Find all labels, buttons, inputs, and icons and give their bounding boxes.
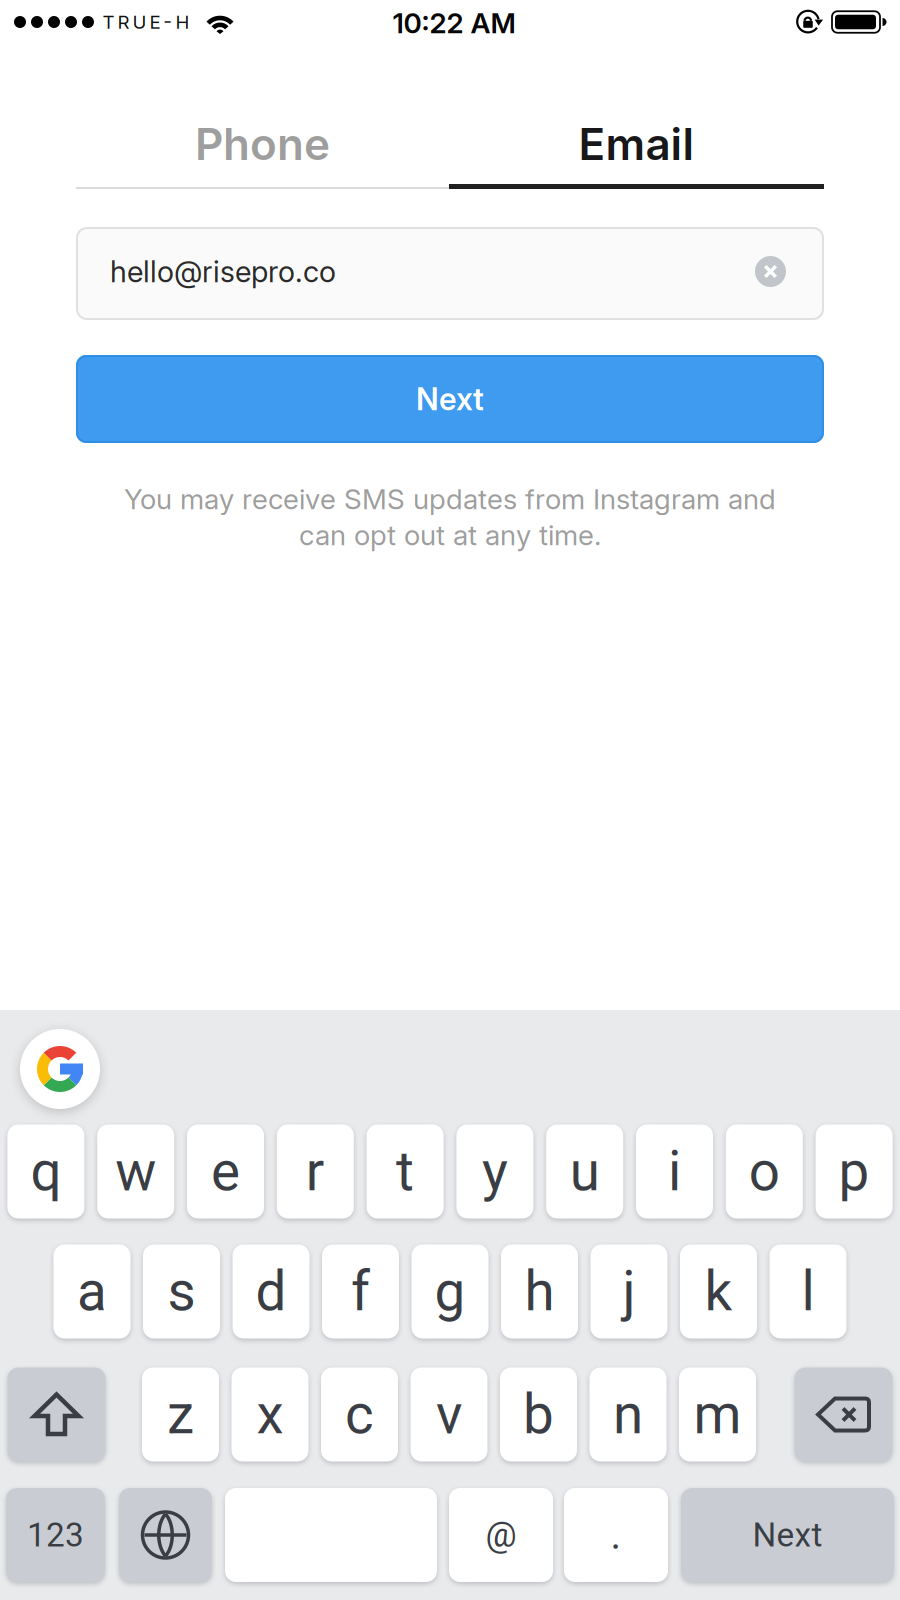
button[interactable]: . bbox=[564, 1488, 668, 1582]
staticText: g bbox=[434, 1259, 465, 1324]
button[interactable]: i bbox=[636, 1124, 713, 1218]
staticText: s bbox=[167, 1259, 195, 1324]
staticText: w bbox=[115, 1139, 156, 1204]
staticText: Phone bbox=[195, 117, 330, 171]
button[interactable]: p bbox=[816, 1124, 893, 1218]
staticText: n bbox=[613, 1382, 643, 1447]
staticText: Email bbox=[578, 117, 694, 171]
button[interactable]: Shift bbox=[7, 1367, 105, 1461]
button[interactable]: Google bbox=[20, 1029, 100, 1109]
staticText: 10:22 AM bbox=[392, 6, 515, 40]
button[interactable]: m bbox=[679, 1367, 756, 1461]
staticText: f bbox=[351, 1259, 370, 1324]
staticText: v bbox=[436, 1382, 462, 1447]
staticText: j bbox=[622, 1259, 635, 1324]
button[interactable]: z bbox=[142, 1367, 219, 1461]
staticText: k bbox=[704, 1259, 732, 1324]
button[interactable]: s bbox=[143, 1244, 220, 1338]
staticText: You may receive SMS updates from Instagr… bbox=[124, 482, 776, 516]
staticText: p bbox=[839, 1139, 870, 1204]
button[interactable]: Next bbox=[681, 1488, 894, 1582]
button[interactable]: d bbox=[232, 1244, 309, 1338]
button[interactable]: u bbox=[546, 1124, 623, 1218]
button[interactable]: Switch keyboard bbox=[119, 1488, 212, 1582]
button[interactable]: w bbox=[97, 1124, 174, 1218]
staticText: Next bbox=[752, 1515, 822, 1555]
button[interactable]: Clear text bbox=[755, 256, 786, 287]
staticText: r bbox=[306, 1139, 325, 1204]
staticText: q bbox=[30, 1139, 61, 1204]
button[interactable]: c bbox=[321, 1367, 398, 1461]
staticText: a bbox=[77, 1259, 107, 1324]
staticText: x bbox=[256, 1382, 283, 1447]
staticText: m bbox=[693, 1382, 741, 1447]
button[interactable]: l bbox=[769, 1244, 846, 1338]
button[interactable]: Delete bbox=[794, 1367, 892, 1461]
button[interactable]: e bbox=[187, 1124, 264, 1218]
button[interactable]: j bbox=[590, 1244, 667, 1338]
button[interactable]: n bbox=[589, 1367, 666, 1461]
staticText: h bbox=[524, 1259, 554, 1324]
button[interactable]: h bbox=[501, 1244, 578, 1338]
staticText: can opt out at any time. bbox=[299, 518, 601, 552]
staticText: u bbox=[570, 1139, 600, 1204]
staticText: hello@risepro.co bbox=[110, 254, 336, 289]
staticText: b bbox=[523, 1382, 554, 1447]
button[interactable]: r bbox=[277, 1124, 354, 1218]
staticText: Next bbox=[416, 380, 484, 417]
button[interactable]: Phone bbox=[76, 99, 449, 189]
staticText: i bbox=[668, 1139, 681, 1204]
button[interactable]: v bbox=[410, 1367, 487, 1461]
staticText: d bbox=[255, 1259, 286, 1324]
staticText: o bbox=[749, 1139, 780, 1204]
staticText: . bbox=[610, 1512, 621, 1558]
button[interactable]: a bbox=[53, 1244, 130, 1338]
staticText: c bbox=[345, 1382, 374, 1447]
button[interactable]: Email bbox=[449, 99, 824, 189]
staticText: TRUE-H bbox=[102, 11, 189, 33]
staticText: z bbox=[167, 1382, 194, 1447]
button[interactable]: Next bbox=[76, 355, 824, 443]
button[interactable]: @ bbox=[449, 1488, 553, 1582]
staticText: y bbox=[482, 1139, 508, 1204]
staticText: e bbox=[211, 1139, 240, 1204]
button[interactable]: t bbox=[367, 1124, 444, 1218]
button[interactable]: o bbox=[726, 1124, 803, 1218]
staticText: @ bbox=[485, 1515, 516, 1555]
staticText: l bbox=[801, 1259, 814, 1324]
button[interactable]: f bbox=[322, 1244, 399, 1338]
button[interactable]: y bbox=[456, 1124, 533, 1218]
button[interactable]: hello@risepro.co bbox=[76, 227, 824, 320]
button[interactable]: g bbox=[411, 1244, 488, 1338]
staticText: t bbox=[396, 1139, 414, 1204]
button[interactable]: x bbox=[231, 1367, 308, 1461]
button[interactable]: q bbox=[7, 1124, 84, 1218]
button[interactable]: b bbox=[500, 1367, 577, 1461]
staticText: 123 bbox=[27, 1515, 84, 1555]
button[interactable]: k bbox=[680, 1244, 757, 1338]
button[interactable]: 123 bbox=[6, 1488, 105, 1582]
